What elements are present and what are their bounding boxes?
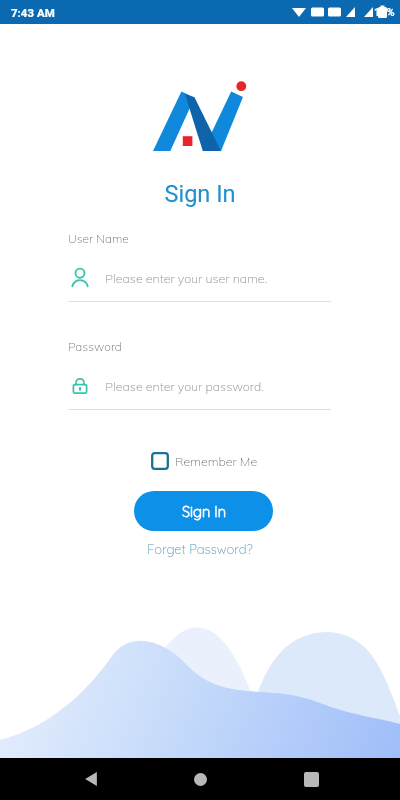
button[interactable]: Please enter your user name. [68, 264, 331, 292]
staticText: 7:43 AM [11, 6, 55, 19]
staticText: Forget Password? [147, 541, 253, 557]
staticText: Sign In [182, 502, 226, 520]
staticText: User Name [68, 231, 129, 246]
staticText: 14% [374, 6, 395, 19]
button[interactable]: Please enter your password. [68, 372, 331, 400]
staticText: Password [68, 339, 122, 354]
staticText: Please enter your password. [105, 378, 264, 394]
button[interactable]: Home [185, 764, 215, 794]
staticText: Sign In [0, 180, 400, 208]
button[interactable]: Back [76, 764, 106, 794]
button[interactable]: Forget Password? [147, 541, 253, 557]
button[interactable]: Remember Me [151, 452, 258, 470]
button[interactable]: Sign In [134, 491, 273, 531]
staticText: Remember Me [175, 453, 258, 469]
staticText: Please enter your user name. [105, 270, 268, 286]
button[interactable]: Recent apps [296, 764, 326, 794]
